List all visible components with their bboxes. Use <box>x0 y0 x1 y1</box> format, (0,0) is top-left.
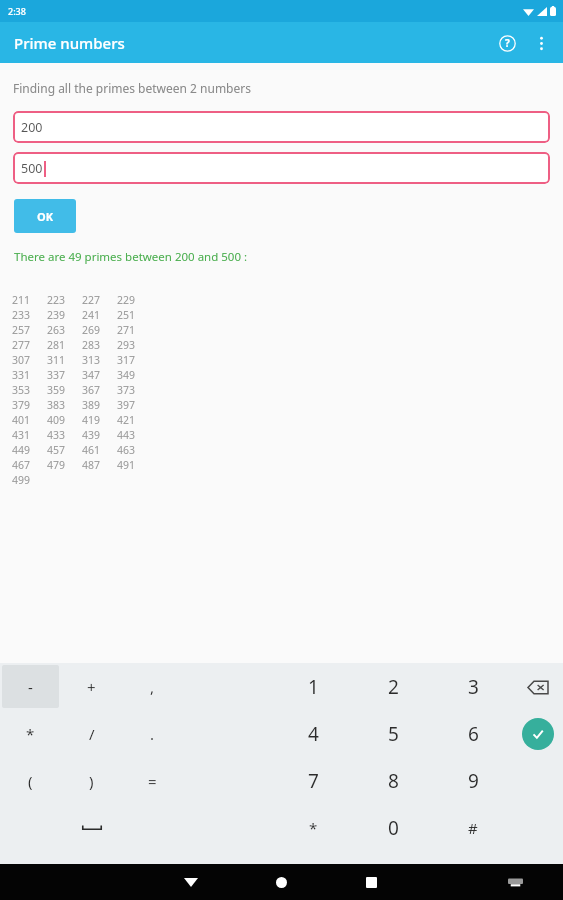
staticText: 349 <box>117 368 136 382</box>
staticText: 241 <box>82 308 101 322</box>
staticText: 359 <box>47 383 66 397</box>
staticText: 431 <box>12 428 31 442</box>
staticText: ? <box>505 36 510 50</box>
staticText: 293 <box>117 338 136 352</box>
button[interactable]: Recents <box>351 864 391 900</box>
button[interactable]: , <box>124 665 181 708</box>
staticText: 8 <box>388 768 399 794</box>
button[interactable]: Switch keyboard <box>495 864 535 900</box>
staticText: 229 <box>117 293 136 307</box>
staticText: # <box>468 818 478 838</box>
button[interactable]: 500 <box>13 152 550 184</box>
button[interactable]: Enter <box>522 718 554 750</box>
button[interactable]: 2 <box>353 663 433 710</box>
button[interactable]: Help <box>489 25 525 61</box>
staticText: ) <box>89 771 94 791</box>
button[interactable]: 200 <box>13 111 550 143</box>
staticText: 367 <box>82 383 101 397</box>
staticText: 7 <box>308 768 319 794</box>
staticText: 277 <box>12 338 31 352</box>
staticText: 281 <box>47 338 66 352</box>
button[interactable]: 5 <box>353 710 433 757</box>
staticText: + <box>87 677 96 697</box>
staticText: 9 <box>468 768 479 794</box>
staticText: 263 <box>47 323 66 337</box>
staticText: 223 <box>47 293 66 307</box>
staticText: 379 <box>12 398 31 412</box>
staticText: * <box>26 724 35 744</box>
staticText: 467 <box>12 458 31 472</box>
button[interactable]: # <box>433 804 513 851</box>
button[interactable]: Back <box>171 864 211 900</box>
staticText: 491 <box>117 458 136 472</box>
staticText: 461 <box>82 443 101 457</box>
button[interactable]: 6 <box>433 710 513 757</box>
button[interactable]: 8 <box>353 757 433 804</box>
staticText: 449 <box>12 443 31 457</box>
staticText: 500 <box>21 160 43 177</box>
staticText: 251 <box>117 308 136 322</box>
staticText: . <box>150 724 155 744</box>
button[interactable]: ( <box>2 759 59 802</box>
staticText: 239 <box>47 308 66 322</box>
button[interactable]: 9 <box>433 757 513 804</box>
button[interactable]: - <box>2 665 59 708</box>
staticText: Finding all the primes between 2 numbers <box>13 80 251 96</box>
button[interactable]: 7 <box>273 757 353 804</box>
staticText: / <box>89 724 95 744</box>
staticText: 337 <box>47 368 66 382</box>
button[interactable]: Backspace <box>518 667 558 707</box>
staticText: 347 <box>82 368 101 382</box>
staticText: 257 <box>12 323 31 337</box>
staticText: 313 <box>82 353 101 367</box>
staticText: 283 <box>82 338 101 352</box>
staticText: 211 <box>12 293 31 307</box>
staticText: 271 <box>117 323 136 337</box>
staticText: 269 <box>82 323 101 337</box>
button[interactable]: 3 <box>433 663 513 710</box>
button[interactable]: * <box>2 712 59 755</box>
button[interactable]: / <box>63 712 120 755</box>
staticText: 389 <box>82 398 101 412</box>
button[interactable]: . <box>124 712 181 755</box>
button[interactable]: OK <box>14 199 76 233</box>
button[interactable]: Home <box>261 864 301 900</box>
staticText: 3 <box>468 674 479 700</box>
button[interactable]: 1 <box>273 663 353 710</box>
staticText: 307 <box>12 353 31 367</box>
staticText: 233 <box>12 308 31 322</box>
staticText: 373 <box>117 383 136 397</box>
staticText: 227 <box>82 293 101 307</box>
staticText: 439 <box>82 428 101 442</box>
staticText: 5 <box>388 721 399 747</box>
staticText: 4 <box>308 721 319 747</box>
button[interactable]: ) <box>63 759 120 802</box>
button[interactable] <box>63 806 120 849</box>
staticText: - <box>28 677 33 697</box>
staticText: 0 <box>388 815 399 841</box>
staticText: 353 <box>12 383 31 397</box>
button[interactable]: = <box>124 759 181 802</box>
staticText: 433 <box>47 428 66 442</box>
staticText: 6 <box>468 721 479 747</box>
staticText: 317 <box>117 353 136 367</box>
staticText: 419 <box>82 413 101 427</box>
staticText: 1 <box>308 674 319 700</box>
button[interactable]: More options <box>525 27 557 59</box>
button[interactable]: + <box>63 665 120 708</box>
staticText: 487 <box>82 458 101 472</box>
staticText: ( <box>28 771 33 791</box>
staticText: 401 <box>12 413 31 427</box>
button[interactable]: 4 <box>273 710 353 757</box>
staticText: = <box>148 771 157 791</box>
button[interactable]: * <box>273 804 353 851</box>
button[interactable]: 0 <box>353 804 433 851</box>
staticText: 331 <box>12 368 31 382</box>
staticText: * <box>309 818 318 838</box>
staticText: There are 49 primes between 200 and 500 … <box>14 249 248 265</box>
staticText: 457 <box>47 443 66 457</box>
staticText: 397 <box>117 398 136 412</box>
staticText: 2 <box>388 674 399 700</box>
